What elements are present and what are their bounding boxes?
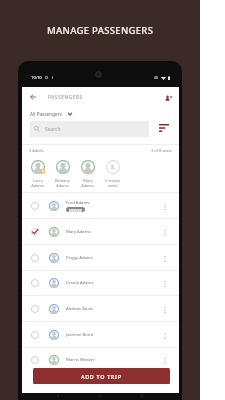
staticText: PASSENGERS bbox=[48, 94, 83, 101]
staticText: Adams bbox=[31, 183, 44, 188]
staticText: Mary Adams bbox=[66, 229, 91, 235]
staticText: Search bbox=[45, 126, 61, 133]
staticText: Fred Adams bbox=[66, 200, 90, 206]
staticText: 3 Adults bbox=[29, 148, 44, 153]
button[interactable]: All Passengers bbox=[30, 109, 72, 119]
button[interactable]: Fred Adams bbox=[22, 193, 179, 219]
staticText: DRIVER bbox=[69, 208, 82, 212]
staticText: Morris Weaver bbox=[66, 357, 95, 363]
button[interactable]: Mary bbox=[75, 160, 100, 188]
button[interactable]: Filter bbox=[155, 120, 172, 136]
button[interactable]: More options bbox=[160, 254, 169, 263]
button[interactable]: Add passenger bbox=[161, 90, 175, 104]
staticText: seats bbox=[108, 183, 118, 188]
staticText: 3 of 8 seats bbox=[151, 148, 172, 153]
staticText: Ursula Adams bbox=[66, 280, 94, 286]
button[interactable]: Andrew Bond bbox=[22, 296, 179, 322]
button[interactable]: Ursula Adams bbox=[22, 270, 179, 296]
button[interactable]: More options bbox=[160, 305, 169, 314]
button[interactable]: Peggy Adams bbox=[22, 245, 179, 271]
staticText: Peggy Adams bbox=[66, 255, 93, 261]
staticText: Brittany bbox=[55, 178, 70, 183]
button[interactable]: Mary Adams bbox=[22, 219, 179, 245]
button[interactable]: More options bbox=[160, 228, 169, 237]
staticText: Jasmine Bond bbox=[66, 332, 93, 338]
button[interactable]: 5 empty bbox=[100, 160, 125, 188]
staticText: Mary bbox=[83, 178, 93, 183]
staticText: 5 empty bbox=[105, 178, 120, 183]
staticText: 4G bbox=[154, 76, 159, 80]
staticText: Andrew Bond bbox=[66, 306, 93, 312]
staticText: ADD TO TRIP bbox=[81, 373, 122, 380]
button[interactable]: More options bbox=[160, 331, 169, 340]
staticText: Adams bbox=[56, 183, 69, 188]
button[interactable]: Brittany bbox=[50, 160, 75, 188]
staticText: Adams bbox=[81, 183, 94, 188]
staticText: MANAGE PASSENGERS bbox=[47, 24, 154, 37]
staticText: Larry bbox=[33, 178, 43, 183]
staticText: All Passengers bbox=[30, 111, 62, 117]
button[interactable]: Morris Weaver bbox=[22, 347, 179, 373]
button[interactable]: More options bbox=[160, 279, 169, 288]
button[interactable]: Search bbox=[30, 121, 149, 137]
button[interactable]: Larry bbox=[25, 160, 50, 188]
button[interactable]: Jasmine Bond bbox=[22, 322, 179, 348]
button[interactable]: Back bbox=[26, 90, 40, 104]
button[interactable]: More options bbox=[160, 356, 169, 365]
staticText: 10:10 bbox=[31, 75, 42, 81]
button[interactable]: More options bbox=[160, 202, 169, 211]
button[interactable]: ADD TO TRIP bbox=[33, 368, 170, 384]
